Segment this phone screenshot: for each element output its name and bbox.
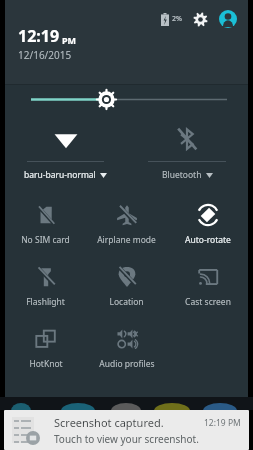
- button[interactable]: Flashlight: [5, 254, 86, 316]
- button[interactable]: Bluetooth: [126, 114, 248, 192]
- staticText: Audio profiles: [99, 358, 155, 370]
- staticText: Auto-rotate: [185, 234, 231, 246]
- button[interactable]: Location: [86, 254, 167, 316]
- button[interactable]: Airplane mode: [86, 192, 167, 254]
- button[interactable]: Screenshot captured.: [4, 410, 249, 450]
- staticText: PM: [62, 34, 77, 46]
- staticText: Screenshot captured.: [54, 415, 164, 430]
- staticText: HotKnot: [29, 358, 63, 370]
- staticText: No SIM card: [21, 234, 70, 246]
- staticText: Flashlight: [26, 296, 65, 308]
- button[interactable]: Cast screen: [167, 254, 248, 316]
- staticText: 12:19 PM: [204, 417, 241, 429]
- staticText: 12/16/2015: [18, 48, 72, 62]
- staticText: 12:19: [18, 25, 60, 47]
- button[interactable]: Auto-rotate: [167, 192, 248, 254]
- staticText: Location: [109, 296, 144, 308]
- button[interactable]: Brightness: [5, 85, 248, 114]
- staticText: Airplane mode: [97, 234, 156, 246]
- button[interactable]: Audio profiles: [86, 316, 167, 378]
- staticText: Bluetooth: [162, 169, 202, 181]
- button[interactable]: baru-baru-normal: [5, 114, 126, 192]
- button[interactable]: User profile: [218, 9, 238, 29]
- button[interactable]: No SIM card: [5, 192, 86, 254]
- staticText: 2%: [172, 14, 182, 24]
- staticText: baru-baru-normal: [24, 169, 96, 181]
- button[interactable]: HotKnot: [5, 316, 86, 378]
- staticText: Cast screen: [185, 296, 231, 308]
- button[interactable]: Settings: [191, 10, 209, 28]
- staticText: Touch to view your screenshot.: [54, 432, 199, 446]
